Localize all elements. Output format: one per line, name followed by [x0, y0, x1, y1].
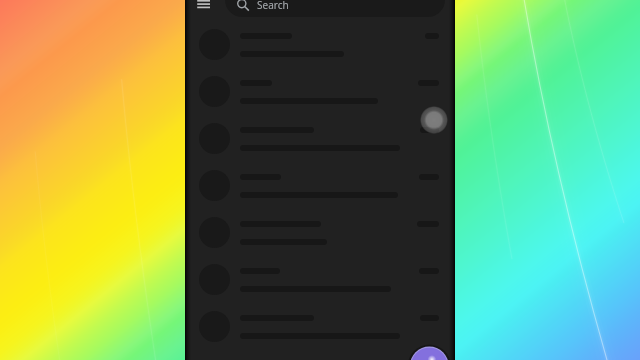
button[interactable]: [185, 209, 455, 256]
button[interactable]: [185, 21, 455, 68]
button[interactable]: [185, 115, 455, 162]
staticText: Search: [257, 0, 289, 12]
button[interactable]: [185, 303, 455, 350]
button[interactable]: [185, 68, 455, 115]
button[interactable]: [225, 0, 445, 17]
button[interactable]: Open navigation drawer: [189, 0, 217, 14]
button[interactable]: [185, 256, 455, 303]
button[interactable]: [185, 162, 455, 209]
button[interactable]: Compose: [404, 337, 454, 360]
